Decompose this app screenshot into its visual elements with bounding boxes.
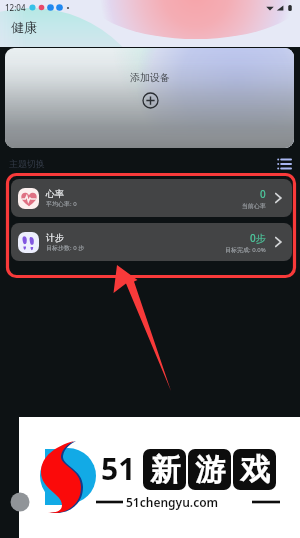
staticText: 主题切换 bbox=[9, 158, 45, 169]
staticText: 添加设备 bbox=[130, 71, 170, 84]
staticText: 0步 bbox=[250, 231, 266, 245]
staticText: 51 bbox=[101, 448, 136, 489]
staticText: 计步 bbox=[46, 232, 64, 243]
staticText: 12:04 bbox=[5, 2, 26, 13]
staticText: 当前心率 bbox=[242, 202, 266, 210]
staticText: 新 bbox=[150, 451, 180, 489]
staticText: 平均心率: 0 bbox=[46, 200, 77, 208]
staticText: 戏 bbox=[240, 451, 270, 489]
button[interactable]: 计步 bbox=[11, 223, 292, 261]
staticText: 目标完成: 0.0% bbox=[225, 246, 266, 254]
staticText: 目标步数: 0 步 bbox=[46, 244, 85, 252]
staticText: 心率 bbox=[46, 188, 64, 199]
button[interactable]: 心率 bbox=[11, 179, 292, 217]
staticText: 0 bbox=[260, 187, 266, 201]
staticText: 健康 bbox=[11, 19, 37, 35]
button[interactable]: 添加设备 bbox=[5, 48, 294, 148]
staticText: 51chengyu.com bbox=[126, 494, 219, 510]
staticText: 游 bbox=[195, 451, 225, 489]
button[interactable]: 列表模式 bbox=[275, 155, 293, 173]
